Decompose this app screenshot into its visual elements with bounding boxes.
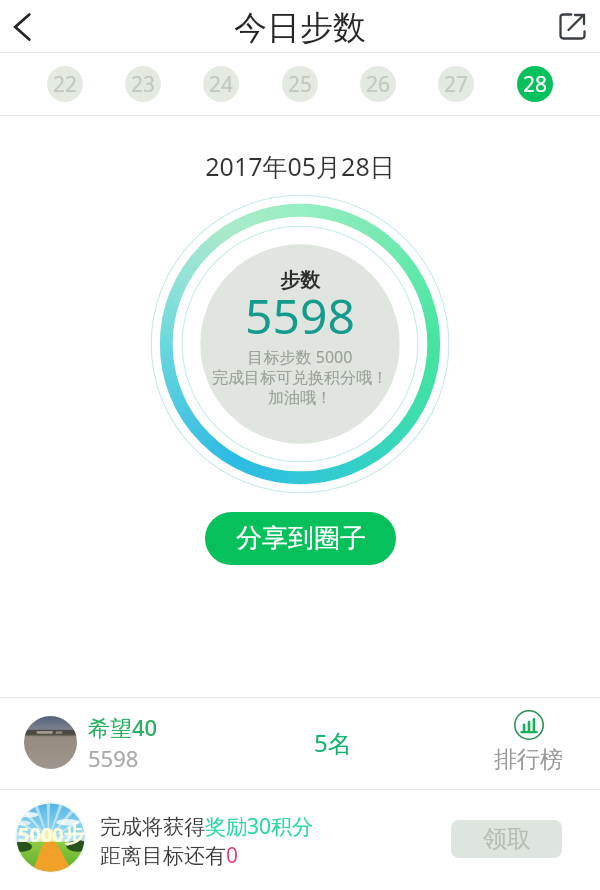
button[interactable]: Share bbox=[544, 0, 600, 53]
staticText: 2017年05月28日 bbox=[0, 149, 600, 183]
staticText: 26 bbox=[366, 70, 391, 99]
staticText: 5名 bbox=[314, 726, 352, 759]
staticText: 排行榜 bbox=[494, 745, 563, 774]
staticText: 目标步数 5000 完成目标可兑换积分哦！ 加油哦！ bbox=[0, 346, 600, 408]
staticText: 领取 bbox=[483, 824, 531, 854]
staticText: 分享到圈子 bbox=[236, 522, 366, 555]
staticText: 今日步数 bbox=[234, 7, 366, 49]
staticText: 5000步 bbox=[18, 821, 84, 848]
button[interactable]: 领取 bbox=[451, 820, 562, 858]
staticText: 完成将获得奖励30积分 bbox=[100, 812, 314, 841]
staticText: 24 bbox=[209, 70, 234, 99]
button[interactable]: 24 bbox=[203, 66, 239, 102]
button[interactable]: 25 bbox=[282, 66, 318, 102]
button[interactable]: Back bbox=[0, 0, 50, 53]
staticText: 25 bbox=[288, 70, 313, 99]
button[interactable]: 希望40 bbox=[0, 698, 600, 789]
staticText: 距离目标还有0 bbox=[100, 841, 239, 870]
button[interactable]: 26 bbox=[360, 66, 396, 102]
button[interactable]: 5000步 bbox=[0, 790, 600, 890]
staticText: 5598 bbox=[88, 743, 139, 773]
staticText: 22 bbox=[53, 70, 78, 99]
button[interactable]: 28 bbox=[517, 66, 553, 102]
staticText: 23 bbox=[131, 70, 156, 99]
button[interactable]: 排行榜 bbox=[490, 704, 566, 786]
staticText: 28 bbox=[523, 70, 548, 99]
button[interactable]: 23 bbox=[125, 66, 161, 102]
button[interactable]: 分享到圈子 bbox=[205, 512, 396, 565]
button[interactable]: 27 bbox=[438, 66, 474, 102]
staticText: 27 bbox=[444, 70, 469, 99]
staticText: 5598 bbox=[0, 283, 600, 348]
button[interactable]: 22 bbox=[47, 66, 83, 102]
staticText: 希望40 bbox=[88, 712, 158, 742]
staticText: 步数 bbox=[0, 268, 600, 293]
